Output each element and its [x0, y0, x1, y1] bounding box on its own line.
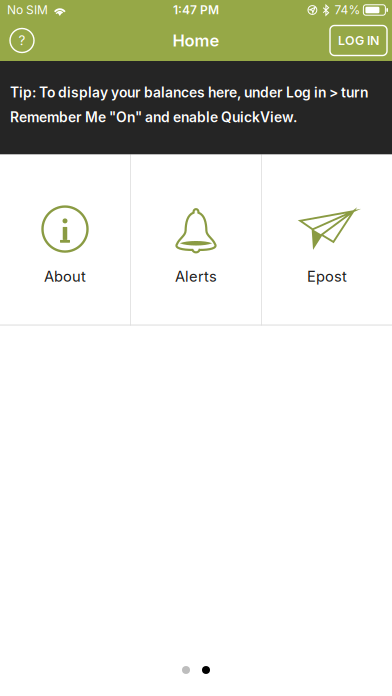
- staticText: No SIM: [7, 3, 48, 17]
- staticText: LOG IN: [338, 33, 379, 48]
- staticText: Remember Me "On" and enable QuickView.: [10, 109, 297, 126]
- staticText: Alerts: [175, 268, 217, 285]
- staticText: 1:47 PM: [173, 3, 219, 17]
- staticText: Epost: [307, 268, 347, 285]
- staticText: Tip: To display your balances here, unde…: [10, 84, 368, 101]
- button[interactable]: Help: [0, 21, 42, 59]
- button[interactable]: About: [0, 155, 130, 326]
- staticText: 74%: [334, 3, 360, 17]
- button[interactable]: Epost: [262, 155, 392, 326]
- staticText: ?: [18, 32, 25, 48]
- staticText: About: [44, 268, 86, 285]
- staticText: Home: [172, 30, 219, 50]
- button[interactable]: Alerts: [131, 155, 261, 326]
- button[interactable]: LOG IN: [330, 20, 392, 60]
